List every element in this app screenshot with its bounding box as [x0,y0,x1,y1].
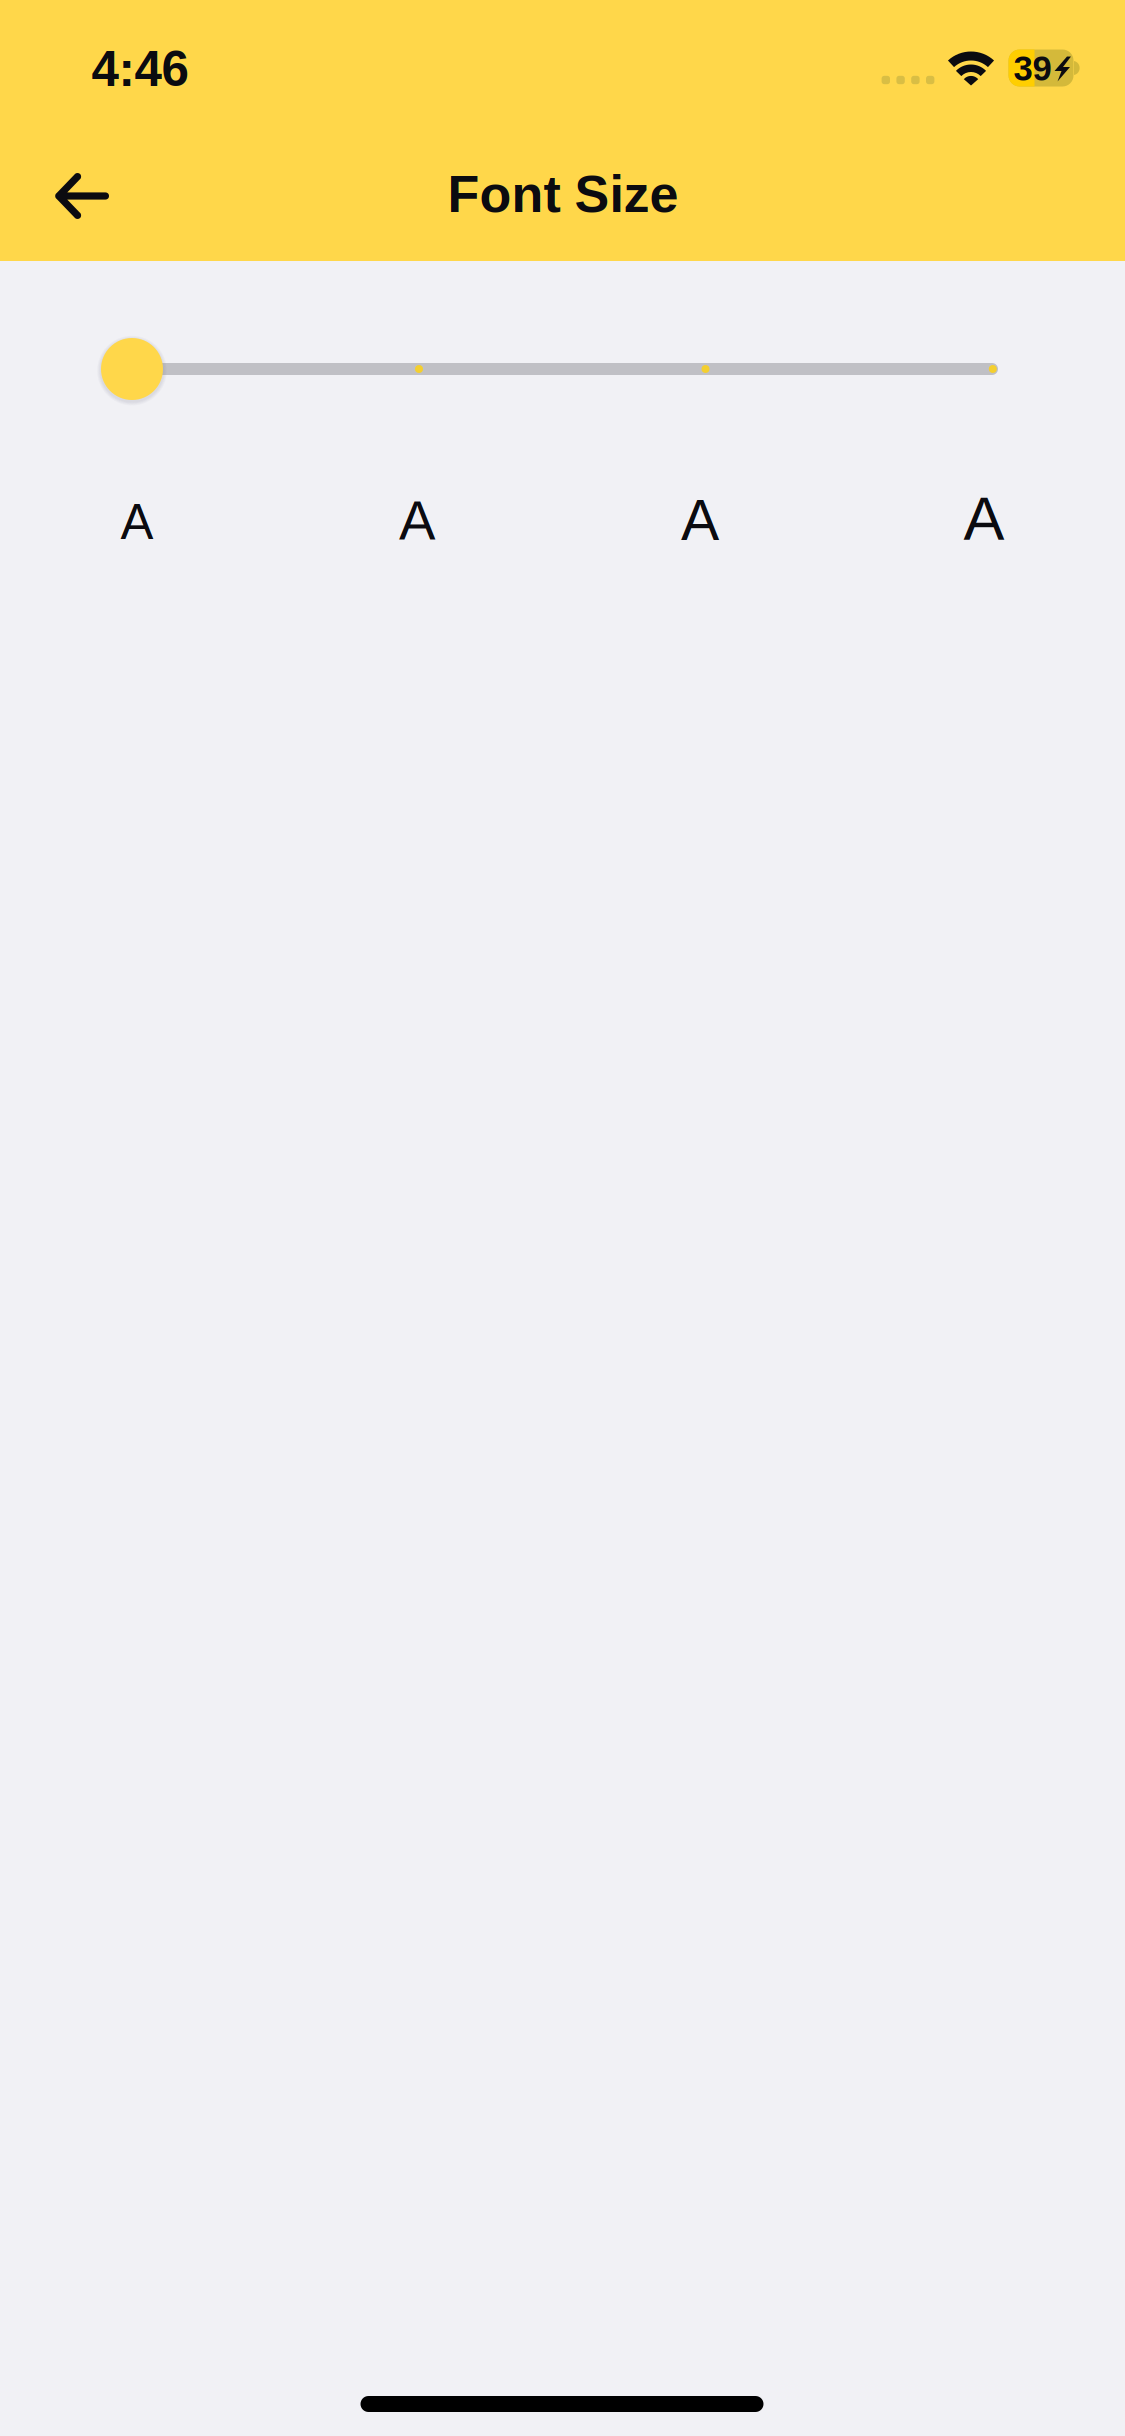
button[interactable]: Back [22,140,142,252]
button[interactable]: A [924,463,1044,573]
staticText: 39 [1013,49,1051,88]
staticText: A [681,488,719,552]
button[interactable]: A [640,465,760,575]
button[interactable]: Font size [132,334,998,404]
staticText: A [399,490,435,551]
staticText: A [963,484,1004,553]
button[interactable]: A [357,465,477,575]
staticText: 4:46 [91,41,188,96]
button[interactable]: A [77,467,197,577]
staticText: A [120,494,153,549]
staticText: Font Size [447,165,678,223]
